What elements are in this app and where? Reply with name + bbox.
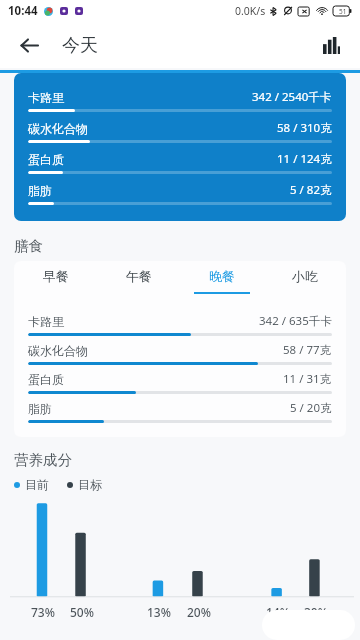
button[interactable]: Statistics	[314, 28, 348, 62]
staticText: 早餐	[43, 268, 69, 284]
staticText: 73%	[31, 604, 55, 620]
staticText: 蛋白质	[28, 372, 64, 387]
button[interactable]: 小吃	[263, 261, 346, 301]
staticText: 目标	[78, 477, 102, 492]
staticText: 碳水化合物	[28, 121, 88, 136]
staticText: 11 / 31克	[283, 371, 332, 387]
button[interactable]: Back	[12, 28, 46, 62]
staticText: 今天	[62, 34, 98, 57]
button[interactable]: 早餐	[14, 261, 97, 301]
staticText: 碳水化合物	[28, 343, 88, 358]
staticText: 卡路里	[28, 314, 64, 329]
button[interactable]: 午餐	[97, 261, 180, 301]
staticText: 11 / 124克	[277, 151, 332, 167]
staticText: 5 / 20克	[290, 400, 332, 416]
button[interactable]: Add entry	[262, 610, 355, 640]
staticText: 卡路里	[28, 90, 64, 105]
button[interactable]: 卡路里	[14, 73, 346, 221]
staticText: 5 / 82克	[290, 182, 332, 198]
staticText: 脂肪	[28, 401, 52, 416]
staticText: 10:44	[8, 3, 38, 19]
staticText: 蛋白质	[28, 152, 64, 167]
staticText: 午餐	[126, 268, 152, 284]
staticText: 50%	[70, 604, 94, 620]
staticText: 营养成分	[14, 451, 72, 469]
staticText: 20%	[187, 604, 211, 620]
staticText: 342 / 2540千卡	[252, 89, 332, 105]
button[interactable]: 晚餐	[180, 261, 263, 301]
staticText: 342 / 635千卡	[259, 313, 332, 329]
staticText: 小吃	[292, 268, 318, 284]
staticText: 14%	[266, 604, 290, 620]
staticText: 13%	[147, 604, 171, 620]
staticText: 58 / 77克	[283, 342, 332, 358]
staticText: 晚餐	[209, 268, 235, 284]
staticText: 目前	[25, 477, 49, 492]
staticText: 30%	[304, 604, 328, 620]
staticText: 膳食	[14, 237, 43, 255]
staticText: 脂肪	[28, 183, 52, 198]
staticText: 0.0K/s	[235, 4, 266, 18]
staticText: 51	[339, 7, 347, 16]
staticText: 58 / 310克	[277, 120, 332, 136]
